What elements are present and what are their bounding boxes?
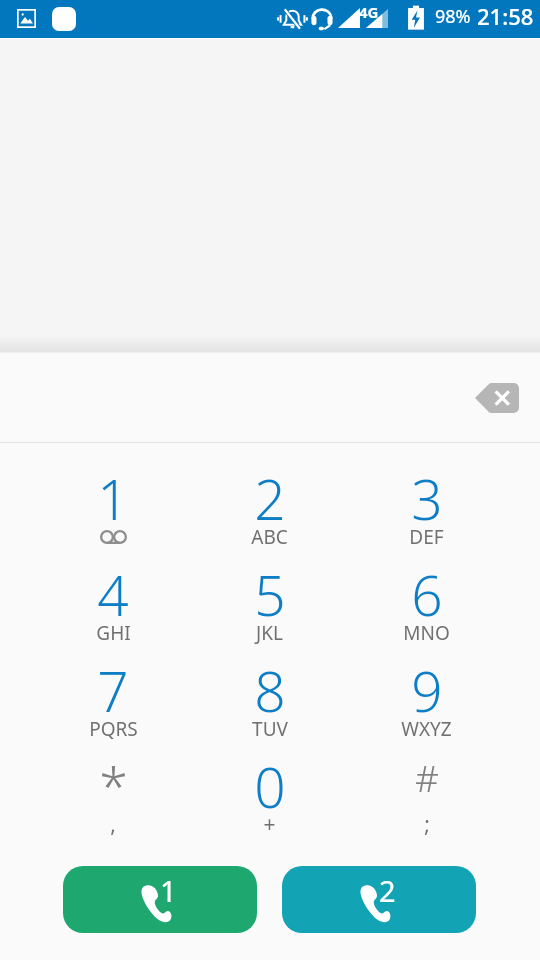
button[interactable]: Backspace bbox=[469, 370, 525, 426]
button[interactable]: 8 bbox=[191, 636, 348, 732]
staticText: 0 bbox=[254, 749, 286, 824]
staticText: PQRS bbox=[89, 716, 138, 742]
staticText: 2 bbox=[254, 461, 286, 536]
staticText: GHI bbox=[96, 620, 131, 646]
button[interactable]: 9 bbox=[348, 636, 505, 732]
staticText: + bbox=[263, 810, 276, 839]
button[interactable]: 3 bbox=[348, 444, 505, 540]
staticText: DEF bbox=[409, 524, 444, 550]
staticText: 3 bbox=[411, 461, 443, 536]
staticText: # bbox=[415, 752, 439, 802]
other: Screenshot bbox=[17, 9, 36, 28]
other: Silent mode bbox=[277, 8, 308, 29]
staticText: 6 bbox=[411, 557, 443, 632]
button[interactable]: 4 bbox=[35, 540, 191, 636]
staticText: 8 bbox=[254, 653, 286, 728]
staticText: 7 bbox=[97, 653, 129, 728]
staticText: JKL bbox=[256, 620, 283, 646]
button[interactable]: 0 bbox=[191, 732, 348, 828]
button[interactable]: 5 bbox=[191, 540, 348, 636]
staticText: 4G bbox=[359, 2, 379, 22]
button[interactable]: * bbox=[35, 732, 191, 828]
other: Battery bbox=[407, 4, 425, 31]
staticText: MNO bbox=[403, 620, 450, 646]
button[interactable]: Call with SIM 2 bbox=[282, 866, 476, 933]
button[interactable]: 2 bbox=[191, 444, 348, 540]
staticText: 98% bbox=[435, 4, 471, 29]
staticText: WXYZ bbox=[401, 716, 452, 742]
staticText: , bbox=[110, 810, 116, 839]
staticText: TUV bbox=[252, 716, 288, 742]
staticText: 1 bbox=[160, 871, 177, 910]
other: Headset bbox=[310, 7, 334, 31]
button[interactable]: 6 bbox=[348, 540, 505, 636]
other: Signal strength bbox=[366, 9, 388, 28]
staticText: * bbox=[99, 749, 128, 820]
button[interactable]: 1 bbox=[35, 444, 191, 540]
staticText: 5 bbox=[254, 557, 286, 632]
other: Signal strength bbox=[338, 8, 360, 28]
button[interactable]: # bbox=[348, 732, 505, 828]
button[interactable]: Call with SIM 1 bbox=[63, 866, 257, 933]
staticText: 2 bbox=[379, 871, 396, 910]
staticText: 21:58 bbox=[477, 1, 534, 31]
staticText: 9 bbox=[411, 653, 443, 728]
button[interactable]: 7 bbox=[35, 636, 191, 732]
staticText: ABC bbox=[251, 524, 288, 550]
staticText: 1 bbox=[97, 461, 129, 536]
staticText: ; bbox=[424, 810, 430, 839]
staticText: 4 bbox=[97, 557, 129, 632]
